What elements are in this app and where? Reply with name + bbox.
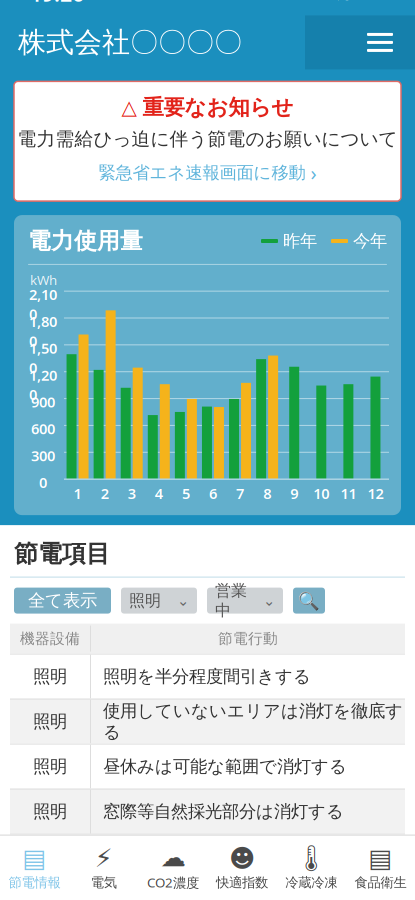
staticText: 営業中 xyxy=(215,581,247,620)
staticText: 4 xyxy=(155,484,163,503)
staticText: 1 xyxy=(73,484,81,503)
staticText: 2 xyxy=(101,484,109,503)
staticText: 機器設備 xyxy=(20,630,80,648)
staticText: 10 xyxy=(313,484,329,503)
staticText: 今年 xyxy=(353,230,387,252)
staticText: 300 xyxy=(31,446,55,465)
staticText: 食品衛生 xyxy=(354,874,406,891)
staticText: 19:26 xyxy=(30,0,84,7)
button[interactable]: 照明 xyxy=(0,744,415,789)
staticText: 快適指数 xyxy=(216,874,268,891)
staticText: 電力需給ひっ迫に伴う節電のお願いについて xyxy=(17,128,397,150)
staticText: 昨年 xyxy=(283,230,317,252)
button[interactable]: 照明 xyxy=(0,699,415,744)
staticText: 12 xyxy=(367,484,383,503)
staticText: › xyxy=(310,159,316,186)
staticText: 照明 xyxy=(33,756,67,777)
staticText: 600 xyxy=(31,419,55,438)
staticText: 6 xyxy=(209,484,217,503)
staticText: 900 xyxy=(31,392,55,412)
staticText: kWh xyxy=(30,271,57,289)
button[interactable]: 緊急省エネ速報画面に移動 xyxy=(92,157,322,188)
staticText: 11 xyxy=(340,484,356,503)
staticText: 節電情報 xyxy=(9,874,61,891)
staticText: 5 xyxy=(182,484,190,503)
button[interactable]: ▤ xyxy=(346,840,415,897)
staticText: 緊急省エネ速報画面に移動 xyxy=(98,162,305,183)
staticText: ⌄ xyxy=(263,592,275,609)
button[interactable]: 照明 xyxy=(0,789,415,834)
button[interactable]: ⚡︎ xyxy=(69,840,138,897)
button[interactable]: Search xyxy=(293,588,325,614)
staticText: ⚡︎ xyxy=(95,844,113,873)
staticText: 🔍 xyxy=(298,591,320,610)
staticText: 照明 xyxy=(129,591,161,610)
staticText: △ xyxy=(121,96,136,119)
staticText: ⌄ xyxy=(177,592,189,609)
staticText: 昼休みは可能な範囲で消灯する xyxy=(103,756,347,777)
staticText: 7 xyxy=(236,484,244,503)
staticText: 重要なお知らせ xyxy=(142,94,293,121)
staticText: 照明を半分程度間引きする xyxy=(103,666,311,687)
staticText: 節電項目 xyxy=(14,539,110,569)
staticText: ▤ xyxy=(368,844,392,873)
staticText: 使用していないエリアは消灯を徹底する xyxy=(103,700,403,743)
button[interactable]: ☁︎ xyxy=(138,840,207,897)
button[interactable]: Menu xyxy=(357,19,403,65)
staticText: 照明 xyxy=(33,711,67,732)
staticText: ≋ xyxy=(336,0,353,5)
staticText: 3 xyxy=(128,484,136,503)
staticText: 株式会社〇〇〇〇 xyxy=(18,25,242,60)
staticText: ☁︎ xyxy=(160,843,185,872)
button[interactable]: ☻ xyxy=(207,840,277,897)
button[interactable]: 全て表示 xyxy=(14,588,111,614)
staticText: 1,200 xyxy=(29,365,57,404)
staticText: 🌡 xyxy=(295,844,327,873)
staticText: ▤ xyxy=(23,844,47,873)
staticText: CO2濃度 xyxy=(147,874,199,891)
button[interactable]: 照明 xyxy=(0,654,415,699)
staticText: 0 xyxy=(39,473,47,492)
staticText: 冷蔵冷凍 xyxy=(285,874,337,891)
staticText: 全て表示 xyxy=(28,590,97,611)
staticText: 1,800 xyxy=(29,311,57,350)
staticText: 2,100 xyxy=(29,285,57,324)
button[interactable]: 🌡 xyxy=(277,840,346,897)
staticText: 電力使用量 xyxy=(28,227,143,255)
button[interactable]: 照明 xyxy=(121,588,197,614)
staticText: 照明 xyxy=(33,801,67,822)
staticText: 節電行動 xyxy=(218,630,278,648)
staticText: 9 xyxy=(290,484,298,503)
staticText: 電気 xyxy=(91,874,117,891)
staticText: 窓際等自然採光部分は消灯する xyxy=(103,801,344,822)
staticText: 1,500 xyxy=(29,338,57,377)
button[interactable]: ▤ xyxy=(0,840,69,897)
staticText: ☻ xyxy=(229,844,255,873)
button[interactable]: 営業中 xyxy=(207,588,283,614)
staticText: 照明 xyxy=(33,666,67,687)
staticText: 8 xyxy=(263,484,271,503)
